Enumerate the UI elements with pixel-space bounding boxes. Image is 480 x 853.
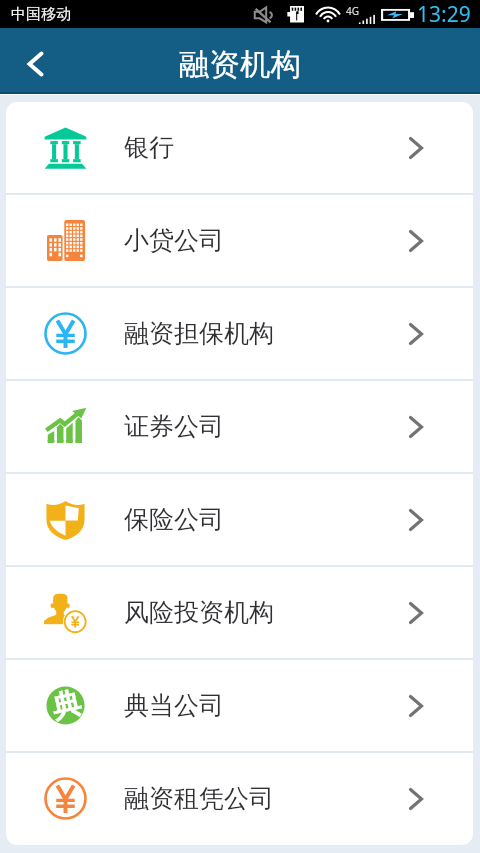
staticText: 融资担保机构 bbox=[124, 318, 274, 349]
staticText: 保险公司 bbox=[124, 504, 224, 535]
staticText: 银行 bbox=[124, 132, 174, 163]
staticText: 13:29 bbox=[417, 0, 471, 28]
staticText: 典当公司 bbox=[124, 690, 224, 721]
button[interactable]: 融资租凭公司 bbox=[6, 753, 473, 844]
staticText: 4G bbox=[346, 4, 359, 18]
staticText: 证券公司 bbox=[124, 411, 224, 442]
staticText: 融资租凭公司 bbox=[124, 783, 274, 814]
button[interactable]: 证券公司 bbox=[6, 381, 473, 472]
button[interactable]: 银行 bbox=[6, 102, 473, 193]
button[interactable]: 小贷公司 bbox=[6, 195, 473, 286]
button[interactable]: 保险公司 bbox=[6, 474, 473, 565]
staticText: 中国移动 bbox=[11, 5, 71, 24]
staticText: 小贷公司 bbox=[124, 225, 224, 256]
button[interactable]: 风险投资机构 bbox=[6, 567, 473, 658]
staticText: 融资机构 bbox=[179, 46, 301, 84]
button[interactable]: Back bbox=[0, 30, 70, 97]
staticText: 典 bbox=[48, 684, 85, 727]
button[interactable]: 典 bbox=[6, 660, 473, 751]
button[interactable]: 融资担保机构 bbox=[6, 288, 473, 379]
staticText: 风险投资机构 bbox=[124, 597, 274, 628]
